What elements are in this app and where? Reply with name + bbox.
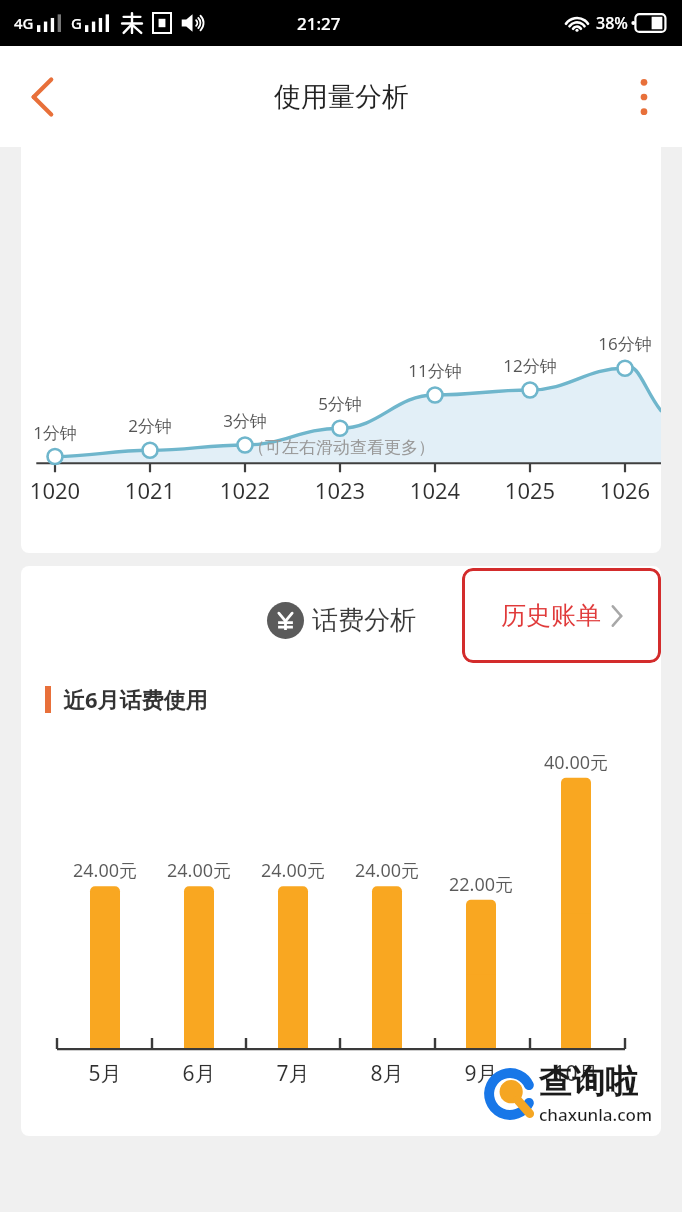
staticText: 7月 [238, 1059, 348, 1088]
staticText: 24.00元 [50, 858, 160, 883]
staticText: 5月 [50, 1059, 160, 1088]
staticText: 8月 [332, 1059, 442, 1088]
staticText: 1026 [580, 475, 661, 505]
staticText: 24.00元 [332, 858, 442, 883]
staticText: 查询啦 [539, 1061, 638, 1103]
staticText: 历史账单 [501, 600, 601, 631]
staticText: 使用量分析 [274, 80, 409, 114]
staticText: 24.00元 [144, 858, 254, 883]
staticText: 38% [596, 12, 628, 34]
staticText: 12分钟 [485, 354, 575, 377]
staticText: 1023 [295, 475, 385, 505]
staticText: 11分钟 [390, 359, 480, 382]
button[interactable]: More options [616, 63, 672, 131]
staticText: 24.00元 [238, 858, 348, 883]
staticText: G [71, 13, 82, 33]
staticText: 1021 [105, 475, 195, 505]
staticText: chaxunla.com [539, 1103, 653, 1126]
staticText: 6月 [144, 1059, 254, 1088]
staticText: 10月 [521, 1059, 631, 1088]
staticText: 1025 [485, 475, 575, 505]
staticText: （可左右滑动查看更多） [248, 437, 435, 458]
staticText: 话费分析 [312, 604, 416, 637]
staticText: 9月 [426, 1059, 536, 1088]
button[interactable]: Back [8, 63, 76, 131]
staticText: 1分钟 [21, 421, 100, 444]
staticText: 近6月话费使用 [63, 684, 208, 714]
button[interactable]: 近10天通话时长 [21, 86, 661, 553]
staticText: 3分钟 [200, 409, 290, 432]
staticText: 4G [14, 13, 34, 33]
staticText: 22.00元 [426, 872, 536, 897]
staticText: 16分钟 [580, 332, 661, 355]
staticText: 40.00元 [521, 750, 631, 775]
staticText: 5分钟 [295, 392, 385, 415]
button[interactable]: 历史账单 [462, 568, 661, 663]
staticText: 2分钟 [105, 414, 195, 437]
staticText: 1022 [200, 475, 290, 505]
staticText: 21:27 [297, 12, 341, 35]
staticText: 1024 [390, 475, 480, 505]
staticText: 1020 [21, 475, 100, 505]
